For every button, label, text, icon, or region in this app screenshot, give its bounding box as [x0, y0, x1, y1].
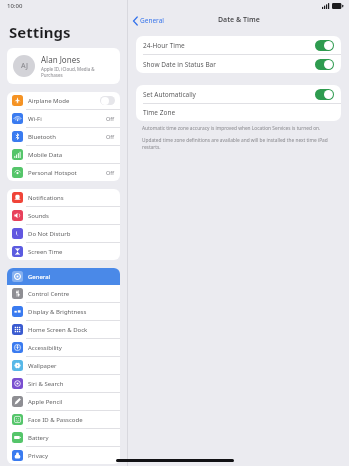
staticText: Apple Pencil	[28, 398, 63, 406]
staticText: Face ID & Passcode	[28, 416, 83, 424]
button[interactable]: 24-Hour Time	[136, 36, 341, 54]
button[interactable]: General	[133, 16, 164, 25]
button[interactable]: AJ	[7, 48, 120, 84]
staticText: Notifications	[28, 194, 64, 202]
button[interactable]: Set Automatically	[136, 85, 341, 103]
staticText: Off	[106, 169, 115, 176]
staticText: Do Not Disturb	[28, 230, 71, 238]
staticText: Updated time zone definitions are availa…	[142, 137, 341, 151]
staticText: Screen Time	[28, 248, 63, 256]
button[interactable]: Home Screen & Dock	[7, 321, 120, 338]
staticText: Accessibility	[28, 344, 62, 352]
staticText: General	[28, 273, 51, 281]
button[interactable]: Display & Brightness	[7, 303, 120, 320]
button[interactable]: Privacy	[7, 447, 120, 464]
staticText: Airplane Mode	[28, 97, 70, 105]
staticText: Automatic time zone accuracy is improved…	[142, 125, 321, 132]
staticText: Show Date in Status Bar	[143, 60, 216, 69]
button[interactable]: On	[315, 59, 334, 70]
staticText: Apple ID, iCloud, Media & Purchases	[41, 66, 114, 78]
button[interactable]: Show Date in Status Bar	[136, 55, 341, 73]
staticText: 10:00	[7, 2, 23, 10]
button[interactable]: Wi-Fi	[7, 110, 120, 127]
staticText: General	[140, 16, 164, 25]
button[interactable]: Sounds	[7, 207, 120, 224]
button[interactable]: Mobile Data	[7, 146, 120, 163]
button[interactable]: Siri & Search	[7, 375, 120, 392]
staticText: Battery	[28, 434, 49, 442]
staticText: 24-Hour Time	[143, 41, 185, 50]
staticText: Date & Time	[218, 15, 260, 25]
button[interactable]: On	[315, 89, 334, 100]
staticText: Home Screen & Dock	[28, 326, 88, 334]
staticText: Sounds	[28, 212, 49, 220]
staticText: Wi-Fi	[28, 115, 42, 123]
staticText: Time Zone	[143, 108, 176, 117]
button[interactable]: Apple Pencil	[7, 393, 120, 410]
staticText: Display & Brightness	[28, 308, 87, 316]
button[interactable]: Notifications	[7, 189, 120, 206]
staticText: Off	[106, 115, 115, 122]
button[interactable]: Control Centre	[7, 285, 120, 302]
button[interactable]: Accessibility	[7, 339, 120, 356]
staticText: Set Automatically	[143, 90, 196, 99]
staticText: Privacy	[28, 452, 49, 460]
button[interactable]: Do Not Disturb	[7, 225, 120, 242]
button[interactable]: Off	[100, 96, 115, 105]
staticText: Control Centre	[28, 290, 70, 298]
button[interactable]: Personal Hotspot	[7, 164, 120, 181]
button[interactable]: Screen Time	[7, 243, 120, 260]
button[interactable]: Battery	[7, 429, 120, 446]
button[interactable]: Time Zone	[136, 104, 341, 121]
button[interactable]: Wallpaper	[7, 357, 120, 374]
staticText: Settings	[9, 22, 71, 42]
staticText: Alan Jones	[41, 54, 80, 65]
button[interactable]: Face ID & Passcode	[7, 411, 120, 428]
staticText: Bluetooth	[28, 133, 56, 141]
staticText: Wallpaper	[28, 362, 57, 370]
staticText: Personal Hotspot	[28, 169, 77, 177]
button[interactable]: Airplane Mode	[7, 92, 120, 109]
staticText: Mobile Data	[28, 151, 63, 159]
button[interactable]: General	[7, 268, 120, 285]
button[interactable]: On	[315, 40, 334, 51]
staticText: AJ	[21, 61, 28, 71]
button[interactable]: Bluetooth	[7, 128, 120, 145]
staticText: Off	[106, 133, 115, 140]
staticText: Siri & Search	[28, 380, 64, 388]
